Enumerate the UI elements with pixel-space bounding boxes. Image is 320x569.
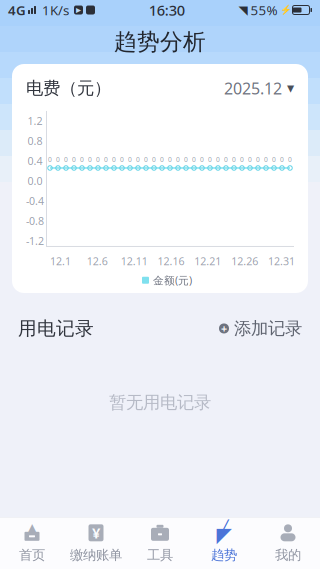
staticText: 0 [224,155,228,164]
staticText: 工具 [147,547,173,563]
staticText: 0 [152,155,156,164]
staticText: -0.4 [26,194,44,208]
staticText: ◥ [238,3,247,17]
staticText: 0 [248,155,252,164]
staticText: ╱ [219,520,229,538]
staticText: 0 [200,155,204,164]
staticText: 0 [176,155,180,164]
staticText: 12.31 [268,254,295,268]
staticText: + [221,321,227,336]
staticText: -0.8 [26,214,44,228]
staticText: 首页 [19,547,45,563]
staticText: 用电记录 [18,317,94,340]
staticText: 1K/s [42,1,69,19]
button[interactable]: + [219,318,302,339]
staticText: 12.11 [121,254,148,268]
staticText: 0 [160,155,164,164]
button[interactable]: 工具 [128,517,192,569]
staticText: 0 [256,155,260,164]
staticText: 12.6 [87,254,108,268]
staticText: 0 [120,155,124,164]
staticText: 趋势 [211,547,237,563]
staticText: 我的 [275,547,301,563]
staticText: 0 [280,155,284,164]
staticText: -1.2 [26,234,44,248]
staticText: 4G [8,1,26,19]
staticText: 0 [72,155,76,164]
staticText: 暂无用电记录 [109,392,211,413]
staticText: ▼ [287,83,294,94]
staticText: 0 [264,155,268,164]
button[interactable]: ¥ [64,517,128,569]
staticText: 12.1 [50,254,71,268]
staticText: 缴纳账单 [70,547,122,563]
staticText: 12.21 [194,254,221,268]
staticText: 12.26 [231,254,258,268]
staticText: 0.8 [27,134,42,148]
staticText: 0 [184,155,188,164]
staticText: ▲ [26,520,37,537]
staticText: 0 [240,155,244,164]
staticText: 0 [136,155,140,164]
staticText: 0 [88,155,92,164]
staticText: 0 [288,155,292,164]
staticText: 0 [128,155,132,164]
staticText: 55% [250,1,277,19]
staticText: 0 [112,155,116,164]
button[interactable]: 我的 [256,517,320,569]
staticText: ▶ [76,6,81,14]
staticText: 0 [192,155,196,164]
staticText: 金额(元) [153,273,192,287]
staticText: 0 [48,155,52,164]
staticText: 0 [64,155,68,164]
staticText: 16:30 [149,0,185,20]
staticText: 添加记录 [234,318,302,339]
staticText: 0 [272,155,276,164]
staticText: 0 [208,155,212,164]
staticText: 趋势分析 [114,28,206,56]
staticText: 0.0 [27,174,42,188]
staticText: 0 [168,155,172,164]
staticText: 0 [80,155,84,164]
staticText: ¥ [92,523,100,543]
button[interactable]: ▲ [0,517,64,569]
staticText: 电费（元） [26,78,111,99]
button[interactable]: ◤ [192,517,256,569]
staticText: 0 [144,155,148,164]
staticText: 1.2 [27,114,42,128]
staticText: 0 [232,155,236,164]
staticText: 12.16 [157,254,184,268]
staticText: 0 [56,155,60,164]
staticText: ◤ [216,523,231,546]
staticText: 0.4 [27,154,42,168]
staticText: 0 [216,155,220,164]
button[interactable]: 2025.12 [224,78,294,99]
staticText: 0 [96,155,100,164]
staticText: 0 [104,155,108,164]
staticText: ⚡ [279,5,291,15]
staticText: 2025.12 [224,78,282,99]
